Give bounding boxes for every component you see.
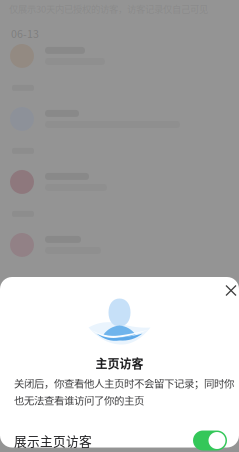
staticText: 也无法查看谁访问了你的主页 — [14, 393, 144, 408]
button[interactable]: 关闭 — [215, 280, 239, 304]
staticText: 主页访客 — [95, 354, 143, 372]
button[interactable]: 展示主页访客 — [0, 424, 239, 452]
staticText: 06-13 — [11, 25, 39, 41]
staticText: 展示主页访客 — [14, 431, 92, 450]
staticText: 关闭后，你查看他人主页时不会留下记录；同时你 — [14, 375, 234, 391]
